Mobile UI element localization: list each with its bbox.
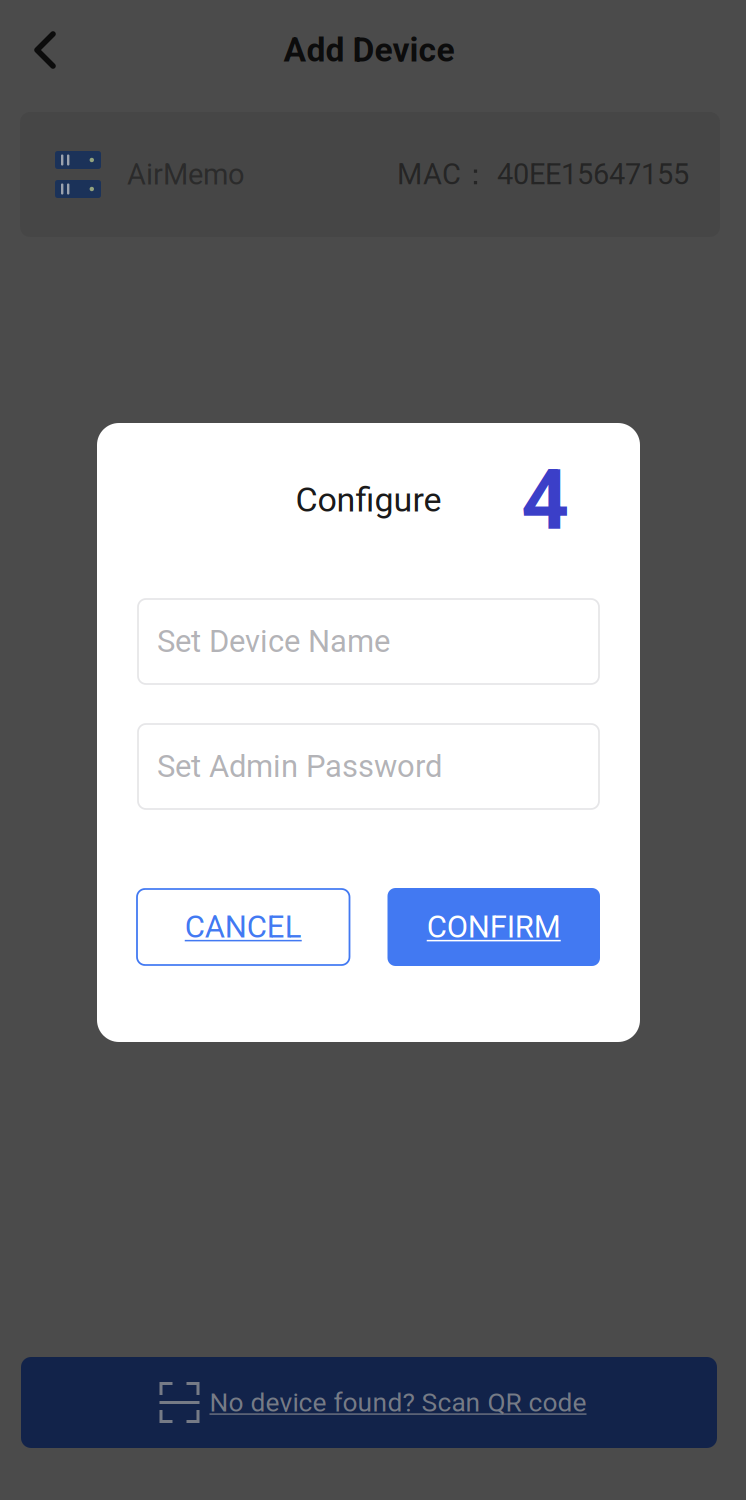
staticText: Configure xyxy=(295,480,441,520)
button[interactable]: Back xyxy=(0,17,78,83)
staticText: MAC： 40EE15647155 xyxy=(397,156,689,193)
button[interactable]: AirMemo xyxy=(20,112,720,237)
button[interactable]: CONFIRM xyxy=(387,888,600,966)
staticText: CONFIRM xyxy=(427,909,561,945)
staticText: AirMemo xyxy=(127,157,245,191)
button[interactable]: No device found? Scan QR code xyxy=(21,1357,717,1448)
button[interactable]: CANCEL xyxy=(137,889,349,965)
staticText: Add Device xyxy=(283,30,454,70)
staticText: Set Device Name xyxy=(157,623,390,660)
staticText: No device found? Scan QR code xyxy=(209,1387,586,1418)
staticText: Set Admin Password xyxy=(157,748,442,785)
staticText: CANCEL xyxy=(185,909,302,945)
staticText: 4 xyxy=(521,451,569,549)
